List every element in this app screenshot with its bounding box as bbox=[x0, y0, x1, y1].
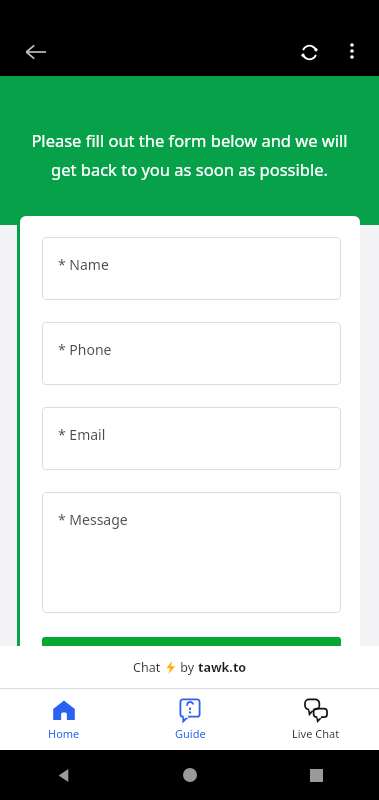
button[interactable]: Home bbox=[0, 688, 127, 750]
staticText: Please fill out the form below and we wi… bbox=[20, 129, 359, 181]
button[interactable]: * Message bbox=[42, 492, 341, 613]
staticText: by bbox=[177, 659, 198, 676]
button[interactable]: Guide bbox=[127, 688, 253, 750]
staticText: Guide bbox=[175, 726, 206, 741]
staticText: Live Chat bbox=[292, 726, 340, 741]
button[interactable]: * Phone bbox=[42, 322, 341, 385]
staticText: * Name bbox=[58, 255, 109, 274]
button[interactable]: * Email bbox=[42, 407, 341, 470]
button[interactable]: Live Chat bbox=[253, 688, 379, 750]
button[interactable]: Home bbox=[127, 750, 253, 800]
staticText: * Email bbox=[58, 425, 106, 444]
button[interactable] bbox=[42, 637, 341, 651]
button[interactable]: Recent apps bbox=[253, 750, 379, 800]
button[interactable]: * Name bbox=[42, 237, 341, 300]
button[interactable]: Refresh bbox=[287, 30, 331, 74]
button[interactable]: Back bbox=[14, 30, 58, 74]
staticText: * Phone bbox=[58, 340, 112, 359]
button[interactable]: More options bbox=[331, 30, 373, 72]
button[interactable]: Back bbox=[0, 750, 127, 800]
staticText: * Message bbox=[58, 510, 128, 529]
staticText: Home bbox=[48, 726, 80, 741]
staticText: tawk.to bbox=[198, 659, 247, 676]
button[interactable]: Chat bbox=[0, 646, 379, 688]
staticText: Chat bbox=[133, 659, 164, 676]
